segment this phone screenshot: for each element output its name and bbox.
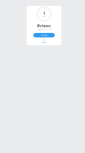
staticText: STEP — [42, 16, 46, 18]
staticText: 1 — [43, 10, 45, 16]
staticText: Continue — [40, 34, 47, 36]
button[interactable]: Continue — [33, 33, 55, 37]
staticText: Sign up — [41, 41, 46, 43]
staticText: Sign in to your account — [36, 29, 51, 31]
staticText: or — [43, 39, 45, 41]
staticText: Welcome — [37, 24, 51, 28]
button[interactable]: Sign up — [41, 41, 46, 43]
